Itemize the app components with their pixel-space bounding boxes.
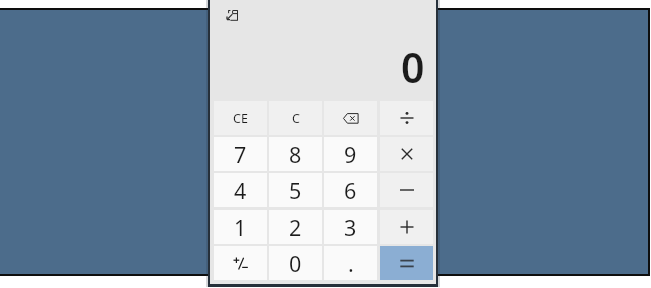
staticText: 6: [344, 176, 357, 205]
button[interactable]: [380, 246, 433, 280]
button[interactable]: 4: [214, 173, 267, 207]
staticText: .: [348, 249, 354, 278]
staticText: 9: [344, 140, 357, 169]
button[interactable]: 5: [269, 173, 322, 207]
staticText: 0: [289, 249, 302, 278]
button[interactable]: 3: [324, 210, 377, 244]
staticText: CE: [233, 110, 248, 127]
button[interactable]: [380, 210, 433, 244]
button[interactable]: [214, 246, 267, 280]
staticText: 7: [234, 140, 247, 169]
button[interactable]: [324, 101, 377, 135]
staticText: 8: [289, 140, 302, 169]
staticText: 2: [289, 213, 302, 242]
staticText: 1: [234, 213, 247, 242]
button[interactable]: CE: [214, 101, 267, 135]
button[interactable]: 7: [214, 137, 267, 171]
button[interactable]: 6: [324, 173, 377, 207]
button[interactable]: 9: [324, 137, 377, 171]
button[interactable]: 2: [269, 210, 322, 244]
button[interactable]: 1: [214, 210, 267, 244]
button[interactable]: [380, 101, 433, 135]
button[interactable]: [223, 7, 241, 24]
button[interactable]: 8: [269, 137, 322, 171]
button[interactable]: [380, 173, 433, 207]
staticText: 4: [234, 176, 247, 205]
staticText: 3: [344, 213, 357, 242]
staticText: 5: [289, 176, 302, 205]
button[interactable]: [380, 137, 433, 171]
button[interactable]: C: [269, 101, 322, 135]
staticText: 0: [401, 39, 425, 95]
button[interactable]: 0: [269, 246, 322, 280]
staticText: C: [292, 110, 300, 127]
button[interactable]: .: [324, 246, 377, 280]
